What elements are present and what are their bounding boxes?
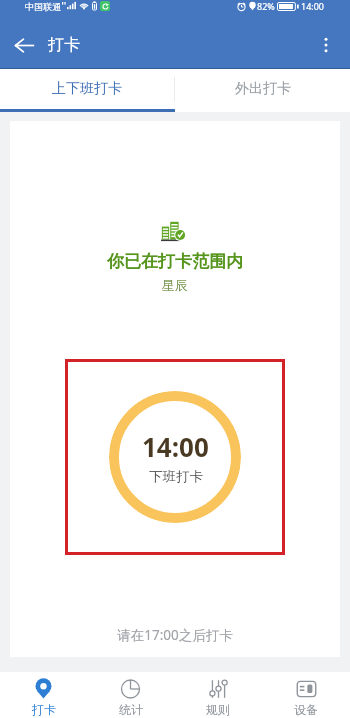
staticText: 你已在打卡范围内 bbox=[107, 251, 243, 272]
staticText: 14:00 bbox=[301, 0, 325, 12]
button[interactable]: 设备 bbox=[262, 672, 350, 718]
button[interactable]: 打卡 bbox=[0, 672, 87, 718]
staticText: 中国联通 bbox=[25, 1, 61, 12]
button[interactable]: 14:00 bbox=[109, 391, 241, 523]
button[interactable]: 统计 bbox=[87, 672, 174, 718]
staticText: 设备 bbox=[294, 702, 318, 717]
staticText: 打卡 bbox=[32, 702, 56, 717]
button[interactable]: 外出打卡 bbox=[175, 69, 350, 109]
staticText: 星辰 bbox=[162, 277, 188, 293]
button[interactable]: More options bbox=[302, 21, 350, 69]
button[interactable]: Back bbox=[0, 21, 48, 69]
staticText: 请在17:00之后打卡 bbox=[117, 626, 233, 644]
staticText: 14:00 bbox=[142, 429, 209, 464]
button[interactable]: 上下班打卡 bbox=[0, 69, 174, 109]
staticText: 上下班打卡 bbox=[52, 80, 122, 98]
staticText: 外出打卡 bbox=[235, 80, 291, 98]
staticText: 统计 bbox=[119, 702, 143, 717]
staticText: 下班打卡 bbox=[149, 468, 203, 485]
button[interactable]: 规则 bbox=[174, 672, 262, 718]
staticText: 82% bbox=[257, 0, 275, 12]
staticText: 规则 bbox=[206, 702, 230, 717]
staticText: 打卡 bbox=[48, 35, 80, 55]
